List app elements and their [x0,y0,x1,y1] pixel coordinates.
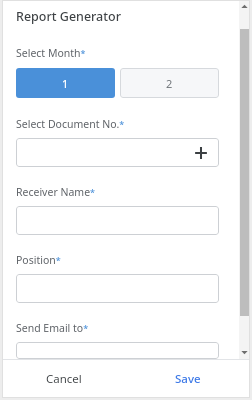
button[interactable]: Save [126,360,250,398]
button[interactable] [16,274,219,303]
button[interactable]: Add document number [16,138,219,167]
staticText: Send Email to* [16,321,89,335]
staticText: Report Generator [16,8,121,25]
button[interactable]: 2 [120,68,219,98]
staticText: Select Month* [16,46,86,60]
staticText: Select Document No.* [16,117,125,131]
button[interactable]: Add document number [192,144,210,162]
button[interactable]: Cancel [2,360,126,398]
button[interactable]: 1 [16,68,115,98]
button[interactable]: Scroll up [239,0,250,13]
button[interactable] [16,206,219,235]
staticText: Cancel [46,371,82,387]
button[interactable] [16,342,219,359]
staticText: Receiver Name* [16,185,96,199]
staticText: 1 [62,76,69,91]
staticText: Save [175,371,201,387]
button[interactable]: Scroll down [239,346,250,359]
staticText: Position* [16,253,61,267]
staticText: 2 [166,76,173,91]
